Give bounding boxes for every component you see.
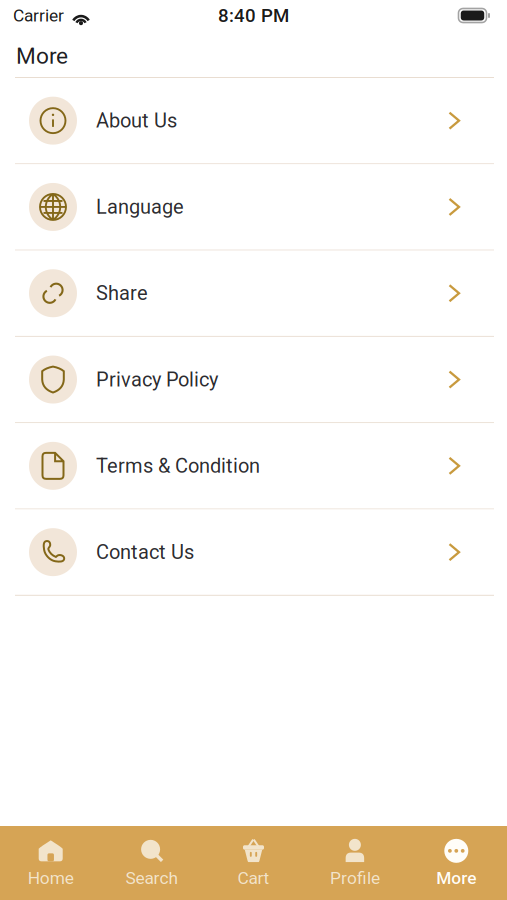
staticText: Share (96, 281, 148, 305)
staticText: More (436, 868, 476, 888)
button[interactable]: Home (0, 829, 101, 897)
button[interactable]: More (406, 829, 507, 897)
button[interactable]: Cart (203, 829, 304, 897)
staticText: Profile (330, 868, 380, 888)
staticText: Cart (237, 868, 269, 888)
staticText: 8:40 PM (218, 5, 289, 26)
staticText: Terms & Condition (96, 454, 260, 477)
button[interactable]: Contact Us (0, 509, 507, 595)
button[interactable]: Privacy Policy (0, 337, 507, 422)
staticText: About Us (96, 109, 177, 132)
button[interactable]: Terms & Condition (0, 423, 507, 508)
button[interactable]: About Us (0, 78, 507, 163)
staticText: Search (126, 868, 179, 888)
staticText: Privacy Policy (96, 368, 218, 391)
staticText: Home (28, 868, 74, 888)
staticText: Contact Us (96, 540, 194, 564)
button[interactable]: Profile (304, 829, 406, 897)
staticText: Language (96, 195, 184, 219)
button[interactable]: Share (0, 251, 507, 336)
staticText: Carrier (13, 5, 64, 26)
button[interactable]: Language (0, 164, 507, 250)
staticText: More (16, 43, 68, 69)
button[interactable]: Search (101, 829, 203, 897)
